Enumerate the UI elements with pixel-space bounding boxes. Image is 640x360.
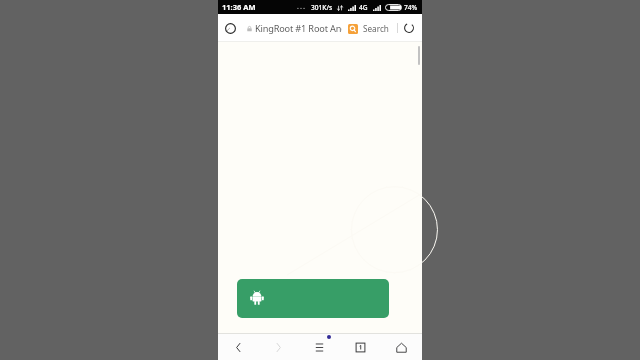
button[interactable]: Stop loading	[222, 20, 238, 36]
button[interactable]: Menu	[299, 334, 340, 360]
button[interactable]: Search	[348, 23, 389, 34]
button[interactable]: Tabs	[340, 334, 381, 360]
button[interactable]: Download for Android	[237, 279, 389, 318]
staticText: 74%	[404, 3, 418, 12]
staticText: 4G	[359, 3, 368, 12]
staticText: 11:36 AM	[222, 2, 256, 12]
staticText: 301K/s	[311, 3, 333, 12]
staticText: KingRoot #1 Root Android	[255, 22, 342, 35]
button[interactable]: Back	[218, 334, 258, 360]
button[interactable]: Home	[381, 334, 422, 360]
button[interactable]: Refresh	[402, 21, 416, 35]
staticText: Search	[363, 23, 389, 34]
